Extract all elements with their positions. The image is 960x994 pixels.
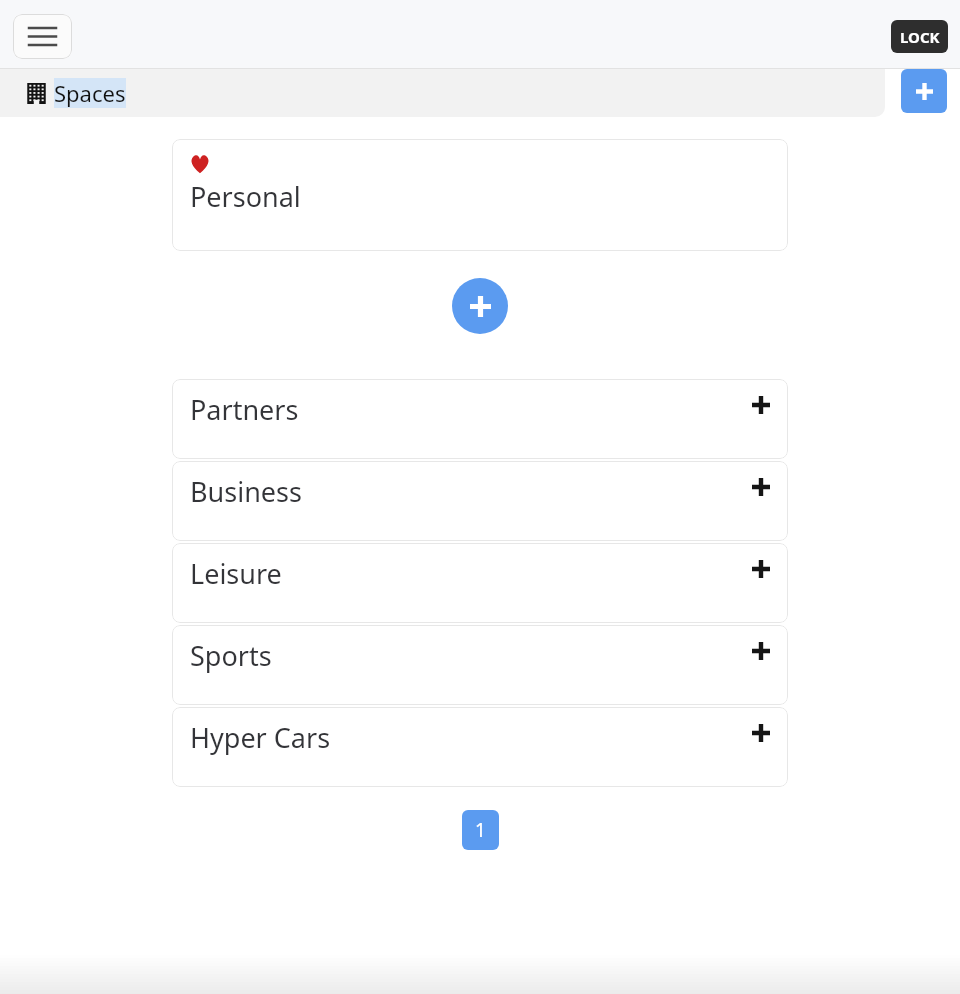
- staticText: Hyper Cars: [190, 719, 331, 756]
- button[interactable]: LOCK: [891, 20, 948, 53]
- button[interactable]: Hyper Cars: [172, 707, 788, 787]
- button[interactable]: 1: [462, 810, 499, 850]
- button[interactable]: Leisure: [172, 543, 788, 623]
- button[interactable]: Add: [452, 278, 508, 334]
- button[interactable]: Spaces: [26, 78, 126, 108]
- button[interactable]: Partners: [172, 379, 788, 459]
- button[interactable]: Menu: [13, 14, 72, 59]
- staticText: 1: [475, 817, 486, 843]
- button[interactable]: Sports: [172, 625, 788, 705]
- staticText: LOCK: [900, 27, 940, 47]
- button[interactable]: Personal: [172, 139, 788, 251]
- staticText: Spaces: [54, 78, 126, 108]
- button[interactable]: Add space: [901, 69, 947, 113]
- staticText: Business: [190, 473, 302, 510]
- button[interactable]: Business: [172, 461, 788, 541]
- staticText: Partners: [190, 391, 299, 428]
- staticText: Leisure: [190, 555, 282, 592]
- staticText: Personal: [190, 178, 301, 215]
- staticText: Sports: [190, 637, 272, 674]
